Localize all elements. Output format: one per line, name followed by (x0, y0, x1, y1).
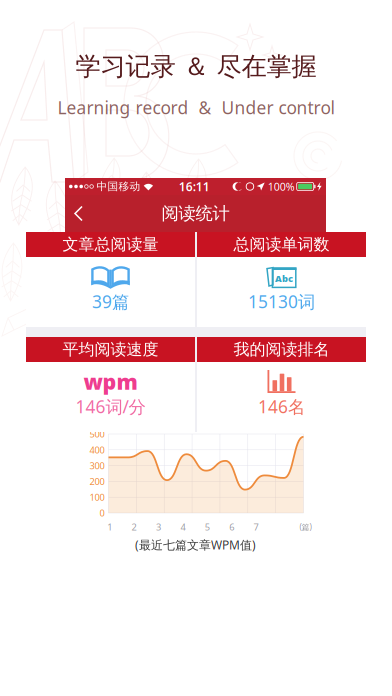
staticText: 3 (156, 521, 161, 533)
staticText: 146词/分 (75, 395, 145, 418)
staticText: 文章总阅读量 (62, 235, 158, 254)
staticText: 15130词 (248, 290, 315, 313)
staticText: Abc (275, 272, 293, 284)
staticText: 400 (89, 444, 104, 456)
staticText: 总阅读单词数 (233, 235, 329, 254)
staticText: 0 (99, 507, 104, 519)
staticText: 7 (254, 521, 259, 533)
staticText: 500 (89, 428, 104, 440)
staticText: 100% (268, 179, 295, 194)
button[interactable]: 总阅读单词数 (197, 232, 366, 327)
button[interactable]: 文章总阅读量 (26, 232, 195, 327)
staticText: 100 (89, 491, 104, 503)
staticText: 300 (89, 459, 104, 472)
staticText: 1 (107, 521, 112, 533)
staticText: wpm (83, 367, 137, 396)
staticText: (最近七篇文章WPM值) (135, 537, 256, 553)
staticText: 146名 (258, 395, 305, 418)
staticText: 6 (229, 521, 234, 533)
staticText: Learning record & Under control (57, 96, 334, 119)
staticText: 5 (205, 521, 210, 533)
button[interactable]: Back (65, 198, 95, 228)
staticText: 我的阅读排名 (233, 340, 329, 359)
button[interactable]: 我的阅读排名 (197, 337, 366, 432)
staticText: (篇) (299, 522, 311, 532)
staticText: 学习记录 ＆ 尽在掌握 (75, 51, 316, 82)
button[interactable]: 平均阅读速度 (26, 337, 195, 432)
staticText: 2 (132, 521, 137, 533)
staticText: 39篇 (92, 290, 129, 313)
staticText: 阅读统计 (161, 203, 229, 224)
staticText: 200 (89, 475, 104, 488)
staticText: 中国移动 (96, 180, 140, 193)
staticText: 16:11 (179, 178, 210, 194)
staticText: 4 (180, 521, 185, 533)
staticText: 平均阅读速度 (62, 340, 158, 359)
